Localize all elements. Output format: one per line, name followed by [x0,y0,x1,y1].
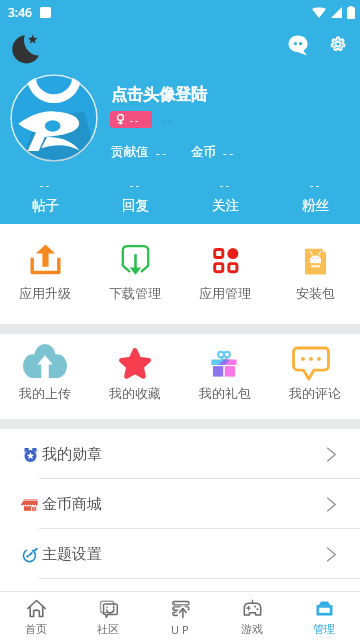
staticText: 关注 [212,197,239,214]
staticText: 应用升级 [19,285,71,301]
button[interactable]: 主题设置 [0,529,360,579]
button[interactable]: - - [180,178,270,214]
staticText: - - [130,114,139,126]
staticText: 首页 [25,622,47,636]
staticText: 3:46 [8,4,32,20]
button[interactable]: Night mode [12,34,42,64]
button[interactable]: 我的礼包 [180,334,270,419]
staticText: 社区 [97,622,119,636]
staticText: - - [163,114,172,126]
button[interactable]: U P [144,592,216,640]
button[interactable]: 我的勋章 [0,429,360,479]
button[interactable]: Messages [288,35,308,55]
button[interactable]: Avatar, tap to log in [10,74,98,162]
staticText: - - [223,145,233,160]
staticText: 应用管理 [199,285,251,301]
staticText: 主题设置 [42,545,102,564]
staticText: - - [220,178,230,192]
staticText: - - [310,178,320,192]
staticText: 我的评论 [289,385,341,401]
button[interactable]: 我的评论 [270,334,360,419]
button[interactable]: 社区 [72,592,144,640]
button[interactable]: 管理 [288,592,360,640]
staticText: - - [130,178,140,192]
staticText: 粉丝 [302,197,329,214]
staticText: 下载管理 [109,285,161,301]
button[interactable]: 金币商城 [0,479,360,529]
button[interactable]: 安装包 [270,224,360,324]
staticText: 管理 [313,622,335,636]
button[interactable]: 我的上传 [0,334,90,419]
staticText: - - [156,145,166,160]
button[interactable]: - - [0,178,90,214]
staticText: 我的礼包 [199,385,251,401]
button[interactable]: 应用升级 [0,224,90,324]
staticText: - - [40,178,50,192]
button[interactable]: 我的收藏 [90,334,180,419]
staticText: 金币 [191,144,216,160]
button[interactable]: 游戏 [216,592,288,640]
button[interactable]: 首页 [0,592,72,640]
staticText: U P [171,622,189,637]
staticText: 安装包 [296,285,335,301]
staticText: 我的上传 [19,385,71,401]
staticText: 金币商城 [42,495,102,514]
staticText: 帖子 [32,197,59,214]
button[interactable]: - - [270,178,360,214]
button[interactable]: - - [90,178,180,214]
button[interactable]: 下载管理 [90,224,180,324]
staticText: 贡献值 [111,144,149,160]
staticText: 游戏 [241,622,263,636]
staticText: 回复 [122,197,149,214]
button[interactable]: 应用管理 [180,224,270,324]
staticText: 我的勋章 [42,445,102,464]
staticText: 点击头像登陆 [111,85,207,105]
button[interactable]: Settings [330,36,346,52]
staticText: 我的收藏 [109,385,161,401]
